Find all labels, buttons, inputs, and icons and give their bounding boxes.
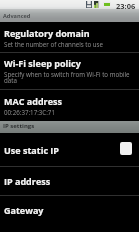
staticText: IP address — [4, 175, 51, 187]
staticText: Gateway — [4, 204, 44, 216]
staticText: Set the number of channels to use — [4, 40, 104, 48]
staticText: IP settings — [3, 122, 35, 130]
button[interactable]: IP address — [0, 167, 139, 195]
button[interactable]: Use static IP — [0, 133, 139, 166]
button[interactable]: MAC address — [0, 90, 139, 121]
button[interactable]: Wi-Fi sleep policy — [0, 53, 139, 89]
button[interactable]: Use static IP checkbox — [120, 142, 132, 155]
staticText: 23:06 — [116, 1, 136, 10]
staticText: Specify when to switch from Wi-Fi to mob… — [4, 70, 135, 85]
button[interactable]: Gateway — [0, 196, 139, 224]
staticText: MAC address — [4, 95, 62, 107]
staticText: Wi-Fi sleep policy — [4, 57, 81, 69]
button[interactable]: Regulatory domain — [0, 22, 139, 52]
staticText: Regulatory domain — [4, 27, 90, 39]
staticText: 00:26:37:17:3C:71 — [4, 108, 55, 116]
staticText: Use static IP — [4, 144, 59, 156]
staticText: Advanced — [3, 12, 31, 20]
